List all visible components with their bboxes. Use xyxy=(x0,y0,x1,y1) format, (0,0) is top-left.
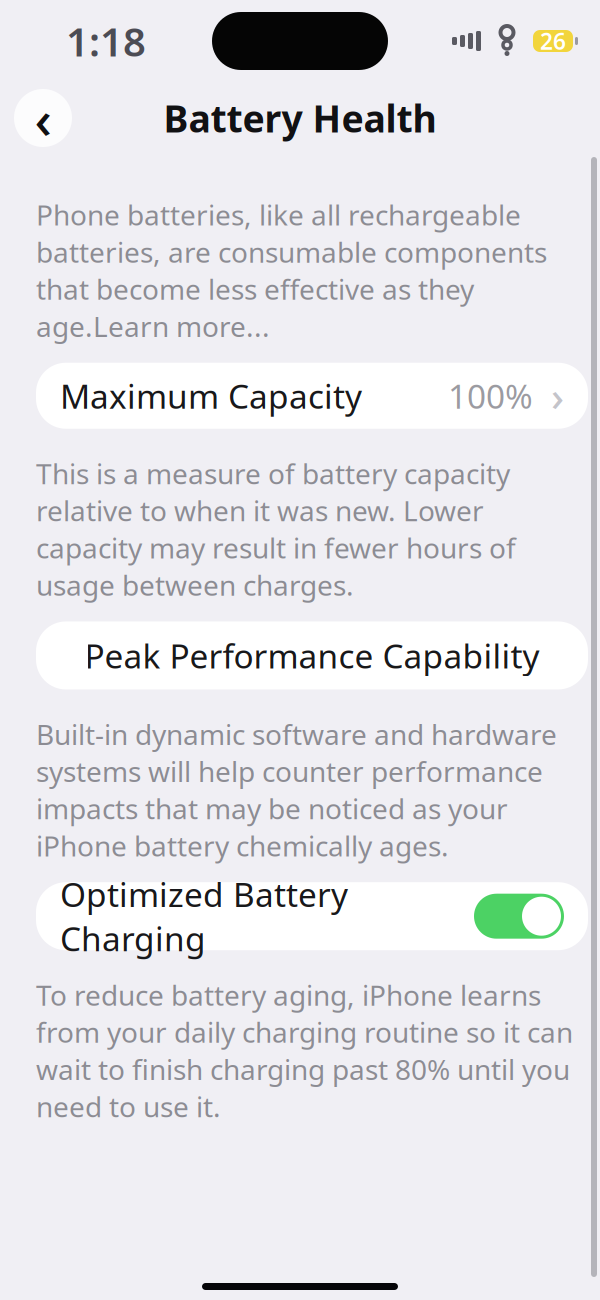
staticText: Phone batteries, like all rechargeable b… xyxy=(36,196,547,345)
staticText: Battery Health xyxy=(163,93,436,143)
staticText: Optimized Battery Charging xyxy=(60,872,348,960)
staticText: › xyxy=(551,369,564,422)
staticText: Built-in dynamic software and hardware s… xyxy=(36,715,557,864)
staticText: 100% xyxy=(448,374,533,418)
button[interactable]: Maximum Capacity xyxy=(36,363,588,429)
button[interactable]: Optimized Battery Charging xyxy=(36,882,588,950)
staticText: Maximum Capacity xyxy=(60,374,362,418)
staticText: To reduce battery aging, iPhone learns f… xyxy=(36,976,573,1125)
staticText: Peak Performance Capability xyxy=(84,633,539,678)
staticText: ‹ xyxy=(34,83,51,153)
staticText: 26 xyxy=(540,26,566,56)
staticText: 1:18 xyxy=(66,14,146,67)
button[interactable]: Back xyxy=(14,83,72,153)
staticText: This is a measure of battery capacity re… xyxy=(36,455,516,603)
button[interactable]: Peak Performance Capability xyxy=(36,621,588,689)
